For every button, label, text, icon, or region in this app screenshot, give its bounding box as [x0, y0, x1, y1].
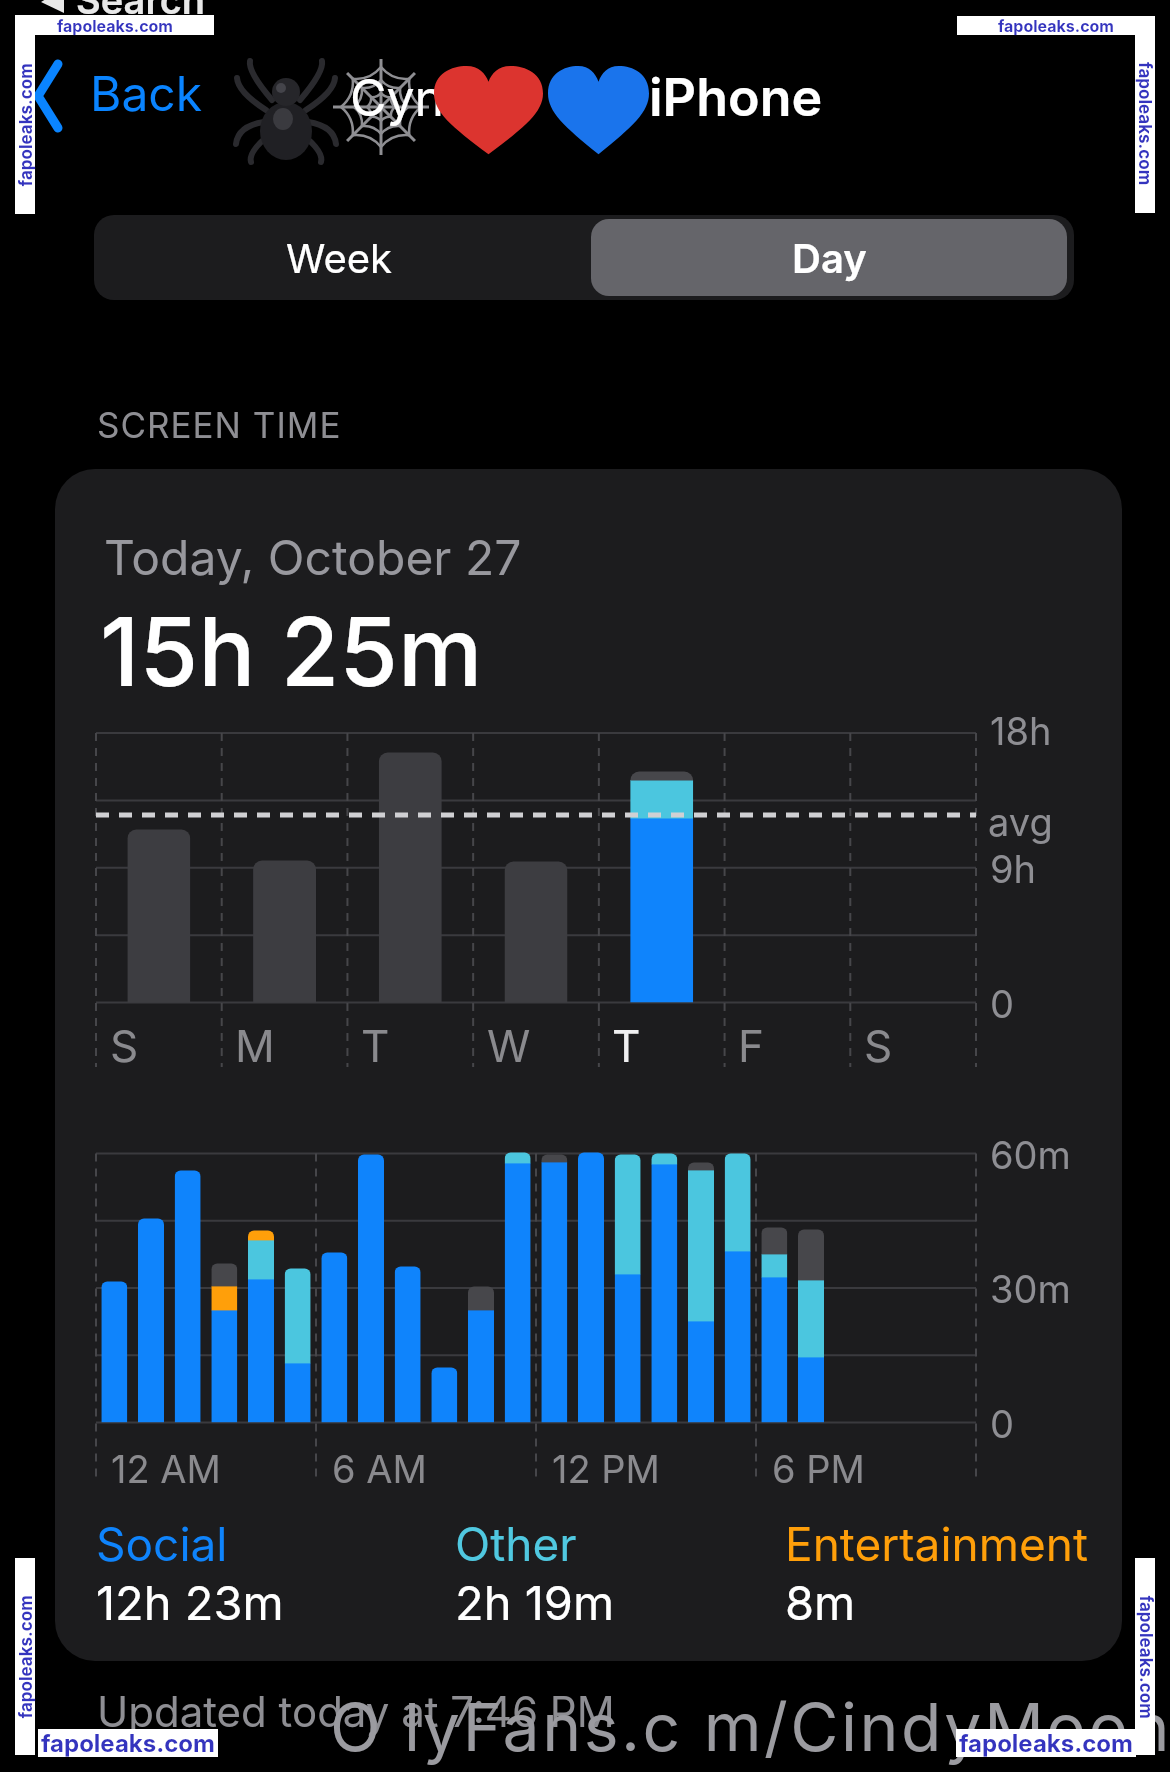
staticText: 9h [990, 846, 1037, 892]
staticText: 15h 25m [100, 594, 483, 709]
staticText: SCREEN TIME [97, 404, 342, 446]
staticText: iPhone [649, 66, 823, 129]
staticText: Cyn [350, 68, 445, 128]
button[interactable]: fapoleaks.com [956, 1729, 1136, 1757]
staticText: Today, October 27 [104, 528, 522, 586]
staticText: M [235, 1019, 275, 1072]
staticText: fapoleaks.com [15, 1594, 35, 1718]
staticText: 6 PM [772, 1446, 865, 1492]
staticText: W [487, 1019, 531, 1072]
button[interactable] [25, 50, 215, 145]
button[interactable]: fapoleaks.com [38, 1729, 218, 1757]
staticText: fapoleaks.com [1135, 1595, 1155, 1719]
staticText: Search [76, 0, 206, 23]
staticText: T [361, 1019, 390, 1072]
staticText: 30m [990, 1266, 1071, 1312]
staticText: 0 [990, 981, 1014, 1027]
button[interactable]: Week [94, 215, 584, 300]
staticText: 12h 23m [96, 1574, 284, 1631]
staticText: Entertainment [785, 1516, 1089, 1572]
staticText: fapoleaks.com [998, 16, 1114, 35]
staticText: 6 AM [332, 1446, 427, 1492]
staticText: S [110, 1019, 139, 1072]
button[interactable]: Day [584, 215, 1074, 300]
staticText: 8m [785, 1574, 856, 1631]
staticText: Updated today at 7:46 PM [97, 1686, 615, 1737]
button[interactable]: fapoleaks.com [15, 15, 214, 35]
staticText: fapoleaks.com [57, 16, 173, 35]
staticText: S [864, 1019, 893, 1072]
button[interactable]: fapoleaks.com [957, 16, 1155, 35]
staticText: O lyFans.c m/CindyMoonT [330, 1687, 1170, 1767]
staticText: 2h 19m [455, 1574, 615, 1631]
staticText: 12 AM [111, 1446, 221, 1492]
staticText: 60m [990, 1132, 1071, 1178]
staticText: 18h [990, 708, 1052, 754]
staticText: 12 PM [552, 1446, 660, 1492]
staticText: avg [988, 799, 1053, 845]
staticText: Week [286, 234, 392, 282]
staticText: F [738, 1019, 764, 1072]
staticText: fapoleaks.com [959, 1729, 1133, 1757]
staticText: 0 [990, 1401, 1014, 1447]
staticText: fapoleaks.com [1135, 62, 1155, 186]
staticText: Other [455, 1516, 577, 1572]
staticText: fapoleaks.com [41, 1729, 215, 1757]
staticText: Back [90, 64, 203, 122]
staticText: Day [792, 234, 867, 282]
staticText: Social [96, 1516, 228, 1572]
staticText: fapoleaks.com [15, 62, 35, 186]
staticText: T [612, 1019, 641, 1072]
